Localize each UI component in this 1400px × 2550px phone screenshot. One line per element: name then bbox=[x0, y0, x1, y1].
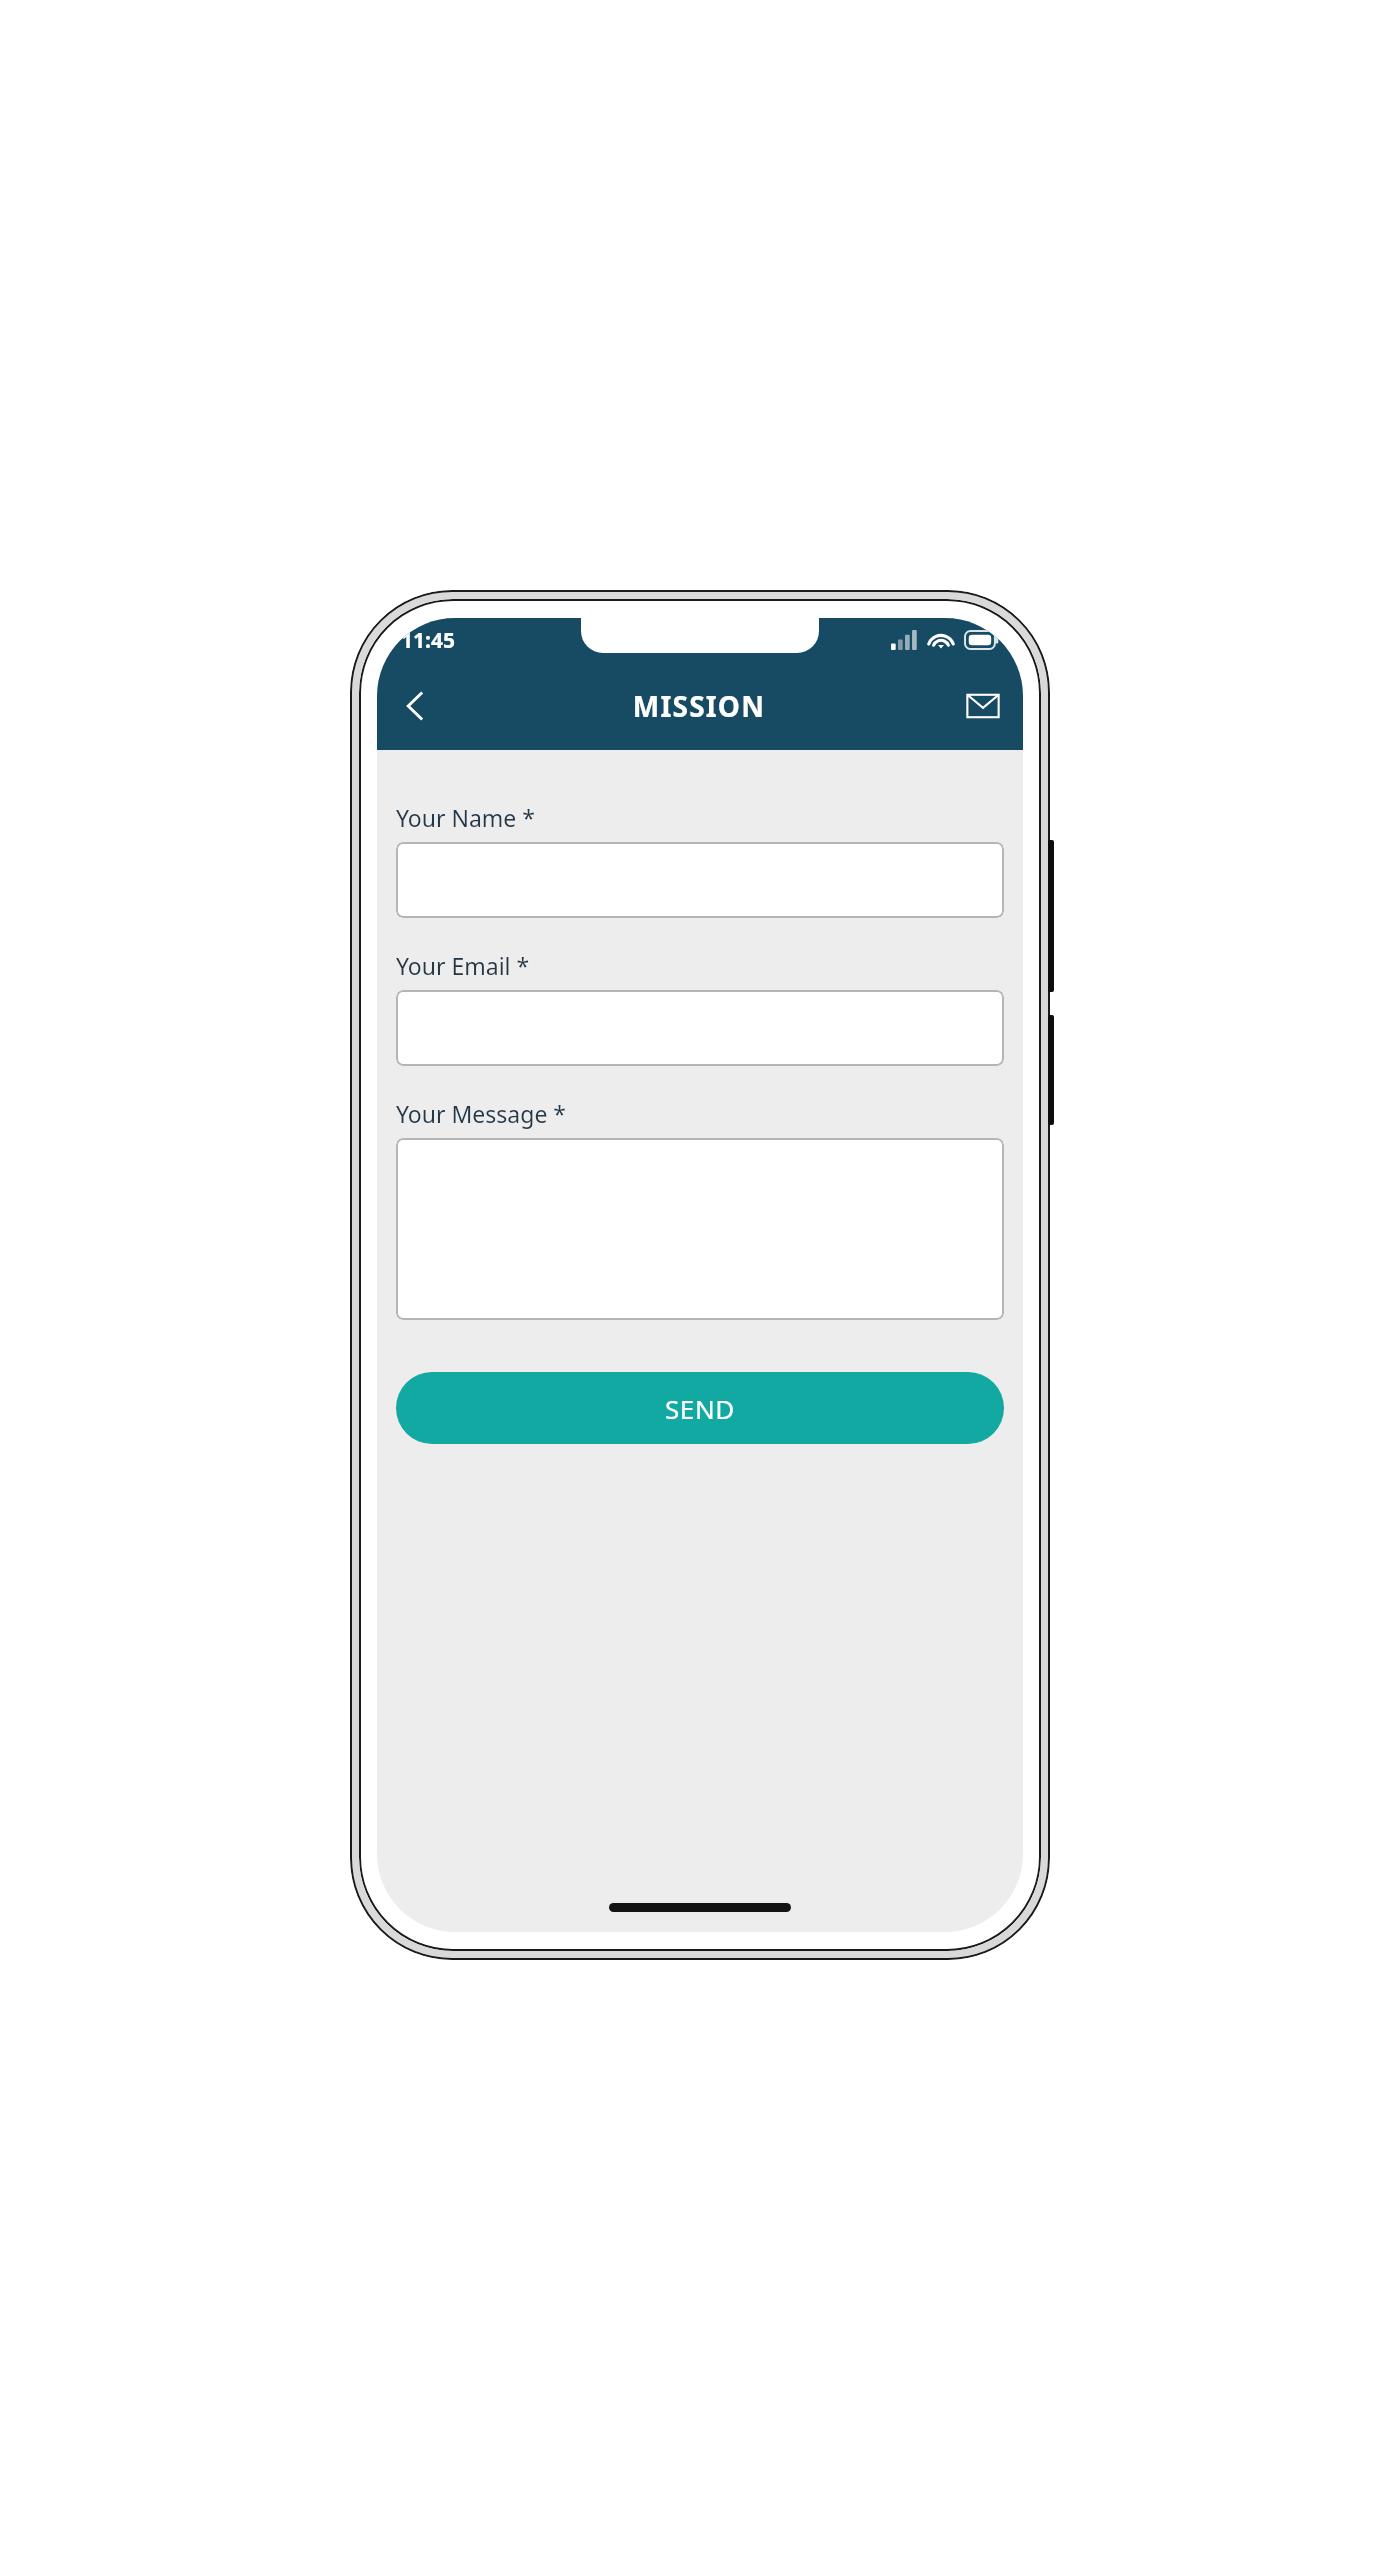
staticText: Your Message * bbox=[396, 1098, 567, 1129]
button[interactable]: Messages bbox=[955, 678, 1011, 734]
button[interactable] bbox=[396, 990, 1004, 1066]
staticText: Your Name * bbox=[396, 802, 535, 833]
staticText: 11:45 bbox=[401, 626, 455, 655]
staticText: SEND bbox=[665, 1391, 735, 1426]
button[interactable]: SEND bbox=[396, 1372, 1004, 1444]
staticText: Your Email * bbox=[396, 950, 530, 981]
button[interactable]: Back bbox=[387, 678, 443, 734]
button[interactable] bbox=[396, 842, 1004, 918]
staticText: MISSION bbox=[443, 687, 955, 725]
button[interactable] bbox=[396, 1138, 1004, 1320]
